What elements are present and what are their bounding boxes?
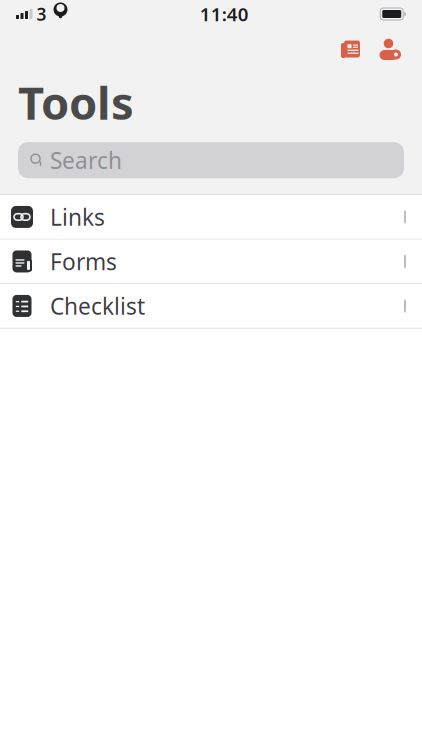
staticText: Search (50, 145, 122, 175)
staticText: Checklist (50, 291, 145, 321)
button[interactable]: News (330, 32, 370, 66)
staticText: Links (50, 202, 105, 232)
button[interactable]: Checklist (0, 284, 422, 329)
staticText: 3 (36, 2, 46, 25)
button[interactable]: Forms (0, 240, 422, 284)
staticText: Tools (18, 72, 134, 132)
button[interactable]: Links (0, 195, 422, 240)
button[interactable]: Account settings (370, 32, 410, 66)
button[interactable]: Search (18, 142, 404, 178)
staticText: 11:40 (200, 2, 249, 26)
staticText: Forms (50, 246, 117, 276)
